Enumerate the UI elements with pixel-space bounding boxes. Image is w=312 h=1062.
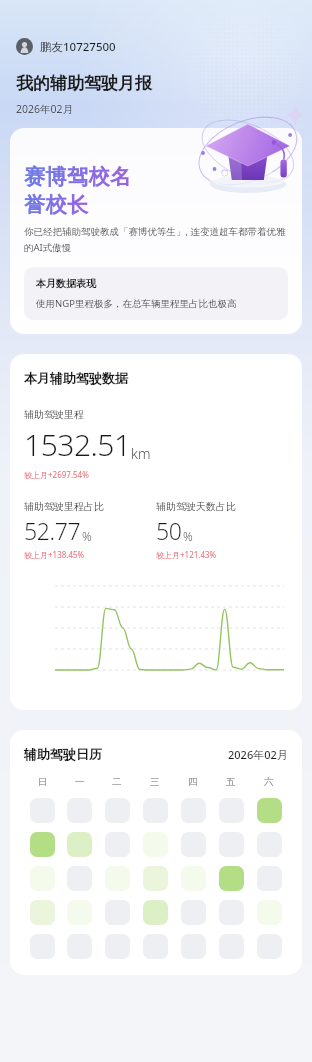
staticText: 2026年02月 [16,102,74,116]
button[interactable] [67,866,92,891]
button[interactable] [181,934,206,959]
button[interactable] [219,934,244,959]
staticText: 使用NGP里程极多，在总车辆里程里占比也极高 [36,297,237,310]
staticText: 鹏友10727500 [40,39,116,55]
staticText: 三 [150,776,160,788]
staticText: 较上月+138.45% [24,549,85,560]
staticText: 五 [226,776,236,788]
staticText: 辅助驾驶里程 [24,408,84,421]
staticText: 你已经把辅助驾驶教成「赛博优等生」, 连变道超车都带着优雅的AI式傲慢 [24,225,288,254]
button[interactable] [143,900,168,925]
button[interactable] [105,798,130,823]
button[interactable]: 鹏友10727500 [16,38,116,55]
staticText: 1532.51 [24,424,131,465]
button[interactable] [257,934,282,959]
button[interactable] [143,832,168,857]
staticText: 一 [75,776,85,788]
staticText: 辅助驾驶日历 [24,746,102,762]
staticText: 二 [112,776,122,788]
button[interactable]: 辅助驾驶日历 [10,730,302,975]
button[interactable] [181,900,206,925]
staticText: % [183,528,193,544]
staticText: 四 [188,776,198,788]
button[interactable] [67,934,92,959]
button[interactable] [30,798,55,823]
staticText: 本月辅助驾驶数据 [24,370,128,386]
button[interactable] [181,866,206,891]
staticText: 誉校长 [24,192,89,218]
button[interactable] [67,832,92,857]
button[interactable] [105,866,130,891]
button[interactable] [67,798,92,823]
button[interactable]: 赛博驾校名 [10,128,302,334]
button[interactable] [143,934,168,959]
button[interactable] [257,866,282,891]
button[interactable] [219,798,244,823]
button[interactable] [105,832,130,857]
button[interactable] [30,866,55,891]
staticText: 较上月+2697.54% [24,469,89,480]
button[interactable] [30,832,55,857]
button[interactable] [105,900,130,925]
staticText: km [131,444,151,463]
button[interactable] [143,798,168,823]
button[interactable] [30,900,55,925]
button[interactable] [219,866,244,891]
staticText: 辅助驾驶天数占比 [156,500,236,513]
button[interactable] [143,866,168,891]
button[interactable] [219,832,244,857]
button[interactable] [30,934,55,959]
button[interactable]: 本月辅助驾驶数据 [10,354,302,710]
staticText: 较上月+121.43% [156,549,217,560]
staticText: 六 [264,776,274,788]
staticText: 辅助驾驶里程占比 [24,500,104,513]
button[interactable] [181,798,206,823]
button[interactable]: 辅助驾驶里程占比 [24,500,156,560]
button[interactable] [257,832,282,857]
staticText: 50 [156,515,182,546]
staticText: 2026年02月 [228,747,288,762]
staticText: 我的辅助驾驶月报 [16,73,152,94]
staticText: 52.77 [24,515,81,546]
button[interactable] [105,934,130,959]
button[interactable]: 辅助驾驶天数占比 [156,500,288,560]
staticText: % [82,528,92,544]
staticText: 日 [38,776,48,788]
button[interactable] [67,900,92,925]
staticText: 本月数据表现 [36,277,96,290]
staticText: 赛博驾校名 [24,164,132,190]
button[interactable] [181,832,206,857]
button[interactable] [257,798,282,823]
button[interactable] [257,900,282,925]
button[interactable] [219,900,244,925]
